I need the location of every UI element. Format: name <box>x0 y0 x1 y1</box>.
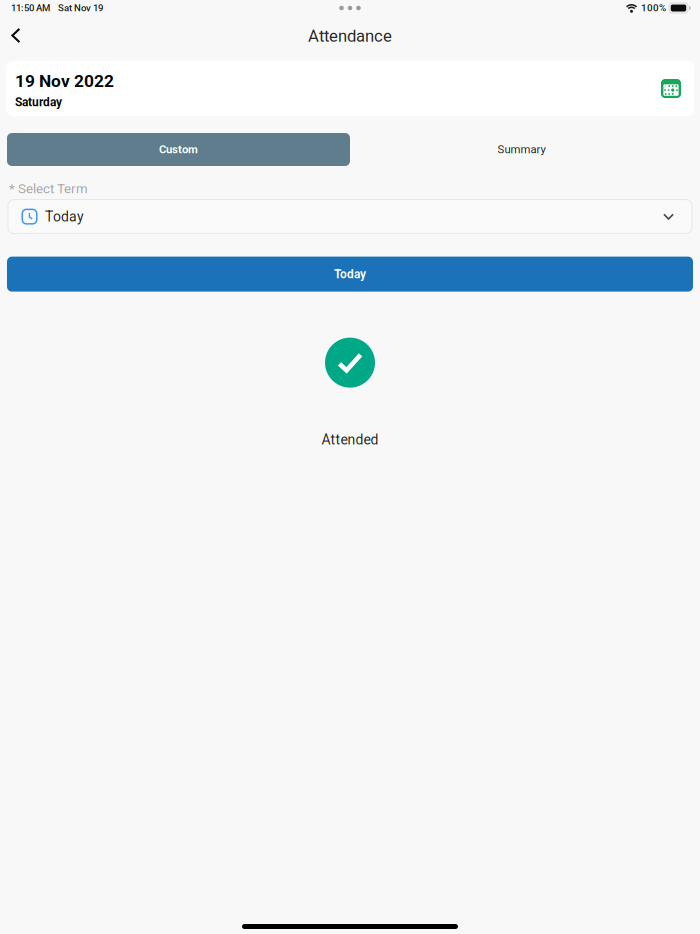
staticText: * Select Term <box>9 181 88 197</box>
staticText: Attendance <box>308 26 392 46</box>
button[interactable]: Today <box>7 257 693 292</box>
staticText: 11:50 AM <box>11 2 50 14</box>
button[interactable]: Back <box>0 21 35 56</box>
staticText: Saturday <box>15 95 62 109</box>
staticText: 100% <box>641 2 666 14</box>
staticText: Sat Nov 19 <box>58 2 103 14</box>
staticText: Custom <box>159 143 198 156</box>
staticText: Today <box>45 208 84 225</box>
button[interactable]: Summary <box>350 133 693 166</box>
staticText: Summary <box>497 143 545 156</box>
button[interactable]: Pick date <box>661 78 681 98</box>
staticText: 19 Nov 2022 <box>15 71 114 91</box>
button[interactable]: Custom <box>7 133 350 166</box>
staticText: Today <box>334 267 366 281</box>
button[interactable]: Today <box>8 200 692 234</box>
staticText: Attended <box>321 432 378 448</box>
